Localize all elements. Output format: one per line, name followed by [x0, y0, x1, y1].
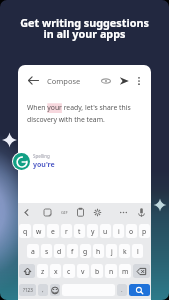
- button[interactable]: Backspace: [133, 264, 150, 278]
- staticText: d: [57, 247, 62, 256]
- button[interactable]: t: [74, 224, 85, 238]
- staticText: y: [91, 227, 95, 236]
- button[interactable]: Spelling: [12, 152, 64, 171]
- staticText: you're: [33, 160, 55, 170]
- button[interactable]: o: [126, 224, 137, 238]
- button[interactable]: n: [105, 264, 117, 278]
- button[interactable]: r: [61, 224, 72, 238]
- button[interactable]: Back: [27, 74, 40, 87]
- staticText: Get writing suggestions in all your apps: [20, 15, 149, 41]
- staticText: n: [109, 267, 114, 276]
- staticText: s: [45, 247, 49, 256]
- button[interactable]: j: [106, 244, 117, 258]
- button[interactable]: d: [54, 244, 65, 258]
- button[interactable]: v: [77, 264, 89, 278]
- button[interactable]: More options: [133, 75, 145, 87]
- staticText: o: [129, 227, 134, 236]
- staticText: z: [41, 267, 45, 276]
- staticText: l: [137, 247, 139, 256]
- button[interactable]: m: [119, 264, 131, 278]
- button[interactable]: Stickers: [42, 207, 53, 218]
- staticText: k: [123, 247, 127, 256]
- button[interactable]: l: [132, 244, 143, 258]
- button[interactable]: GIF: [58, 207, 70, 218]
- button[interactable]: q: [19, 224, 31, 238]
- staticText: e: [51, 227, 55, 236]
- button[interactable]: x: [50, 264, 61, 278]
- button[interactable]: p: [139, 224, 150, 238]
- button[interactable]: Attach: [100, 75, 112, 87]
- staticText: x: [54, 267, 58, 276]
- button[interactable]: s: [41, 244, 52, 258]
- button[interactable]: Send: [118, 75, 130, 87]
- staticText: f: [71, 247, 74, 256]
- staticText: q: [23, 227, 28, 236]
- button[interactable]: .: [117, 284, 127, 296]
- button[interactable]: k: [119, 244, 130, 258]
- staticText: b: [95, 267, 100, 276]
- button[interactable]: Voice input: [136, 207, 147, 218]
- button[interactable]: Clipboard: [75, 207, 86, 218]
- staticText: g: [83, 247, 88, 256]
- button[interactable]: g: [80, 244, 91, 258]
- staticText: Compose: [47, 76, 81, 86]
- staticText: .: [121, 286, 123, 294]
- button[interactable]: More: [118, 207, 129, 218]
- button[interactable]: Shift: [19, 264, 35, 278]
- staticText: GIF: [61, 210, 68, 216]
- button[interactable]: Emoji: [50, 284, 60, 296]
- staticText: i: [118, 227, 120, 236]
- button[interactable]: Back: [21, 207, 32, 218]
- staticText: c: [67, 267, 71, 276]
- button[interactable]: f: [67, 244, 78, 258]
- staticText: Spelling: [33, 153, 50, 159]
- button[interactable]: Settings: [92, 207, 103, 218]
- staticText: h: [96, 247, 101, 256]
- button[interactable]: i: [113, 224, 124, 238]
- button[interactable]: Search: [129, 284, 150, 296]
- button[interactable]: ,: [38, 284, 48, 296]
- staticText: ?123: [23, 287, 33, 293]
- button[interactable]: e: [47, 224, 59, 238]
- button[interactable]: z: [37, 264, 48, 278]
- button[interactable]: u: [100, 224, 111, 238]
- staticText: u: [103, 227, 108, 236]
- button[interactable]: ?123: [19, 284, 36, 296]
- staticText: w: [36, 227, 42, 236]
- button[interactable]: y: [87, 224, 98, 238]
- staticText: a: [31, 247, 35, 256]
- staticText: t: [78, 227, 81, 236]
- staticText: v: [81, 267, 85, 276]
- staticText: p: [142, 227, 147, 236]
- staticText: ,: [42, 286, 44, 294]
- staticText: When your ready, let's share this discov…: [27, 103, 140, 124]
- button[interactable]: h: [93, 244, 104, 258]
- staticText: m: [122, 267, 129, 276]
- button[interactable]: b: [91, 264, 103, 278]
- button[interactable]: a: [27, 244, 39, 258]
- staticText: r: [65, 227, 68, 236]
- button[interactable]: w: [33, 224, 45, 238]
- button[interactable]: c: [63, 264, 75, 278]
- staticText: j: [111, 247, 113, 256]
